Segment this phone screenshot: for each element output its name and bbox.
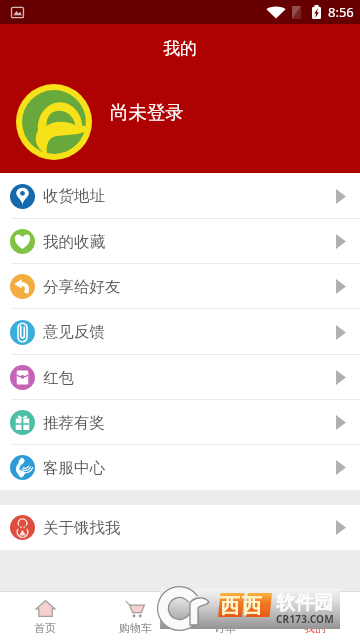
staticText: 我的 <box>304 621 326 635</box>
staticText: 购物车 <box>119 621 152 635</box>
button[interactable]: 客服中心 <box>0 445 360 490</box>
button[interactable]: 红包 <box>0 355 360 400</box>
button[interactable]: 首页 <box>0 592 90 640</box>
staticText: 推荐有奖 <box>43 413 105 433</box>
staticText: 红包 <box>43 368 74 388</box>
staticText: 软件园 <box>276 591 333 615</box>
button[interactable]: 我的 <box>270 592 360 640</box>
staticText: 意见反馈 <box>43 322 105 342</box>
button[interactable]: 分享给好友 <box>0 264 360 309</box>
staticText: 客服中心 <box>43 458 105 478</box>
staticText: 关于饿找我 <box>43 518 121 538</box>
staticText: 尚未登录 <box>110 101 184 124</box>
staticText: 首页 <box>34 621 56 635</box>
button[interactable]: 推荐有奖 <box>0 400 360 445</box>
staticText: CR173.COM <box>276 612 334 626</box>
button[interactable]: 订单 <box>180 592 270 640</box>
staticText: 我的 <box>163 38 197 59</box>
staticText: 我的收藏 <box>43 232 105 252</box>
button[interactable]: 关于饿找我 <box>0 505 360 550</box>
button[interactable]: 收货地址 <box>0 173 360 219</box>
button[interactable]: 我的收藏 <box>0 219 360 264</box>
staticText: 收货地址 <box>43 186 105 206</box>
staticText: 分享给好友 <box>43 277 121 297</box>
button[interactable]: 购物车 <box>90 592 180 640</box>
staticText: 8:56 <box>328 3 354 21</box>
staticText: 西西 <box>219 594 263 619</box>
button[interactable]: 意见反馈 <box>0 309 360 355</box>
staticText: 订单 <box>214 621 236 635</box>
